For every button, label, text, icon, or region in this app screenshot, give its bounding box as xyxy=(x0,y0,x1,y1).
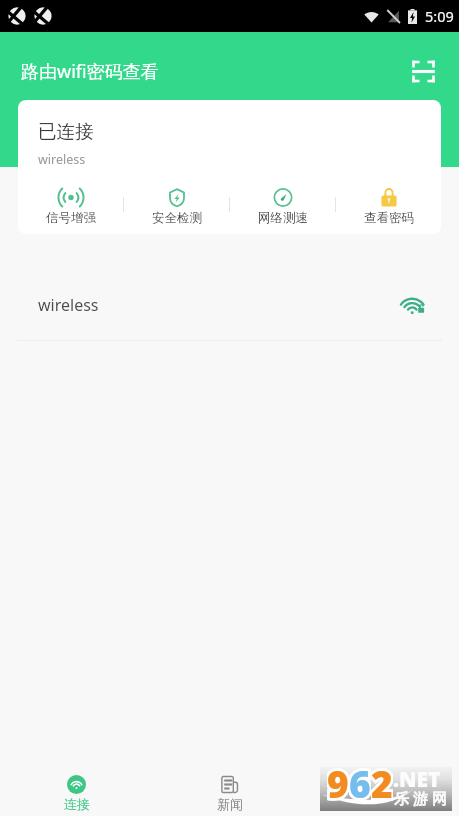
staticText: 我的 xyxy=(370,796,396,812)
staticText: 新闻 xyxy=(217,796,243,812)
staticText: 2 xyxy=(371,758,393,802)
staticText: 查看密码 xyxy=(364,210,414,226)
staticText: wireless xyxy=(38,151,86,168)
staticText: 连接 xyxy=(64,796,90,812)
staticText: 游 xyxy=(413,790,428,809)
button[interactable]: 信号增强 xyxy=(18,188,123,228)
staticText: 2 xyxy=(371,758,393,802)
staticText: 乐 xyxy=(394,790,409,809)
button[interactable]: 安全检测 xyxy=(124,188,229,228)
staticText: 6 xyxy=(349,758,371,802)
staticText: 9 xyxy=(327,758,349,802)
staticText: 9 xyxy=(327,758,349,802)
staticText: 已连接 xyxy=(38,120,94,143)
staticText: wireless xyxy=(38,294,99,316)
staticText: 网络测速 xyxy=(258,210,308,226)
button[interactable]: Scan xyxy=(401,49,445,93)
button[interactable]: 网络测速 xyxy=(230,188,335,228)
button[interactable]: 我的 xyxy=(306,766,459,816)
staticText: 网 xyxy=(432,790,447,809)
button[interactable]: 连接 xyxy=(0,766,153,816)
button[interactable]: 查看密码 xyxy=(336,188,441,228)
staticText: 信号增强 xyxy=(46,210,96,226)
staticText: 安全检测 xyxy=(152,210,202,226)
staticText: 5:09 xyxy=(425,6,454,26)
button[interactable]: wireless xyxy=(0,270,459,340)
staticText: .NET xyxy=(393,765,441,794)
button[interactable]: 新闻 xyxy=(153,766,306,816)
staticText: 路由wifi密码查看 xyxy=(21,59,159,84)
staticText: 6 xyxy=(349,758,371,802)
